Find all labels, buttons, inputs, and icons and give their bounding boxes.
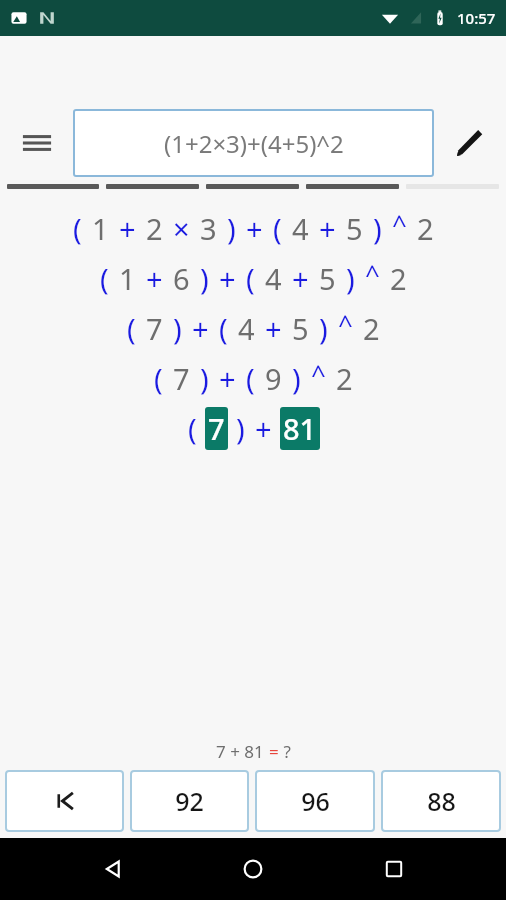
staticText: 4: [292, 209, 309, 248]
staticText: (: [246, 359, 255, 398]
staticText: 5: [292, 309, 309, 348]
staticText: =: [269, 740, 279, 763]
staticText: ): [227, 209, 236, 248]
staticText: 7: [173, 359, 190, 398]
staticText: +: [255, 409, 272, 448]
staticText: ): [292, 359, 301, 398]
staticText: ?: [279, 740, 291, 763]
staticText: +: [219, 359, 236, 398]
staticText: ^: [311, 356, 326, 391]
button[interactable]: 96: [255, 770, 375, 832]
staticText: 1: [92, 209, 109, 248]
staticText: (: [73, 209, 82, 248]
staticText: 81: [283, 409, 317, 448]
staticText: 7: [146, 309, 163, 348]
staticText: ^: [392, 206, 407, 241]
staticText: ): [173, 309, 182, 348]
staticText: +: [292, 259, 309, 298]
staticText: 4: [238, 309, 255, 348]
button[interactable]: Restart: [5, 770, 124, 832]
staticText: 2: [417, 209, 434, 248]
staticText: 5: [346, 209, 363, 248]
staticText: (: [127, 309, 136, 348]
staticText: +: [319, 209, 336, 248]
staticText: 2: [390, 259, 407, 298]
staticText: (: [273, 209, 282, 248]
button[interactable]: 92: [130, 770, 249, 832]
button[interactable]: (1+2×3)+(4+5)^2: [73, 109, 434, 177]
staticText: +: [265, 309, 282, 348]
staticText: 3: [200, 209, 217, 248]
staticText: 92: [175, 784, 204, 818]
staticText: (: [246, 259, 255, 298]
staticText: 7 + 81: [216, 740, 269, 763]
staticText: 1: [119, 259, 136, 298]
staticText: (: [154, 359, 163, 398]
staticText: 9: [265, 359, 282, 398]
staticText: ×: [173, 209, 190, 248]
staticText: 6: [173, 259, 190, 298]
button[interactable]: 88: [381, 770, 501, 832]
staticText: +: [192, 309, 209, 348]
staticText: ): [200, 359, 209, 398]
button[interactable]: Home: [225, 841, 281, 897]
staticText: +: [246, 209, 263, 248]
staticText: ): [200, 259, 209, 298]
staticText: +: [119, 209, 136, 248]
button[interactable]: Edit: [434, 108, 506, 178]
staticText: 96: [301, 784, 330, 818]
staticText: ^: [338, 306, 353, 341]
staticText: (: [219, 309, 228, 348]
staticText: 10:57: [457, 8, 496, 28]
staticText: ): [373, 209, 382, 248]
staticText: 7: [208, 409, 225, 448]
staticText: 5: [319, 259, 336, 298]
staticText: 88: [427, 784, 456, 818]
staticText: ): [236, 409, 245, 448]
staticText: ): [346, 259, 355, 298]
staticText: 2: [336, 359, 353, 398]
staticText: (: [100, 259, 109, 298]
staticText: 4: [265, 259, 282, 298]
staticText: +: [219, 259, 236, 298]
staticText: ^: [365, 256, 380, 291]
button[interactable]: Menu: [0, 108, 73, 178]
staticText: (1+2×3)+(4+5)^2: [164, 127, 344, 160]
staticText: +: [146, 259, 163, 298]
staticText: 2: [146, 209, 163, 248]
button[interactable]: Back: [85, 841, 141, 897]
staticText: ): [319, 309, 328, 348]
staticText: 2: [363, 309, 380, 348]
staticText: (: [188, 409, 197, 448]
button[interactable]: Recents: [366, 841, 422, 897]
